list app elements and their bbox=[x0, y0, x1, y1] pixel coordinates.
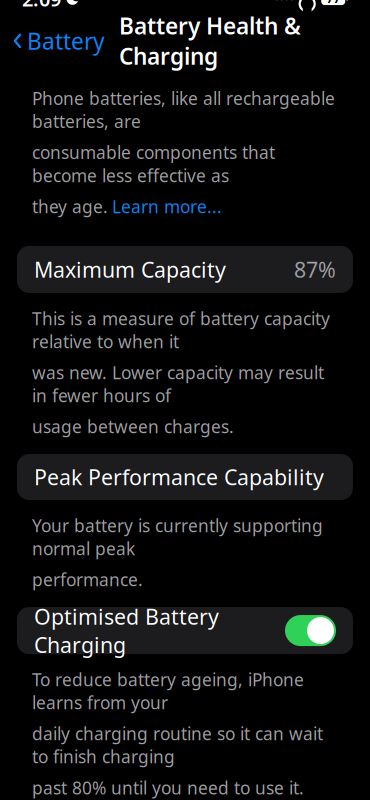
staticText: daily charging routine so it can wait to… bbox=[32, 722, 323, 768]
staticText: was new. Lower capacity may result in fe… bbox=[32, 361, 324, 407]
staticText: Peak Performance Capability bbox=[34, 463, 324, 491]
staticText: Optimised Battery Charging bbox=[34, 602, 219, 659]
staticText: 2:09 bbox=[22, 0, 61, 12]
staticText: 87% bbox=[294, 255, 336, 284]
staticText: Your battery is currently supporting nor… bbox=[32, 514, 323, 560]
staticText: they age. bbox=[32, 195, 108, 218]
button[interactable]: Learn more... bbox=[112, 195, 222, 218]
staticText: Battery bbox=[27, 26, 105, 56]
staticText: usage between charges. bbox=[32, 415, 234, 438]
staticText: To reduce battery ageing, iPhone learns … bbox=[32, 668, 304, 714]
staticText: Learn more... bbox=[112, 195, 222, 218]
button[interactable]: Battery bbox=[0, 20, 105, 62]
staticText: consumable components that become less e… bbox=[32, 141, 275, 187]
staticText: Maximum Capacity bbox=[34, 255, 226, 284]
staticText: Phone batteries, like all rechargeable b… bbox=[32, 87, 335, 133]
staticText: performance. bbox=[32, 568, 143, 591]
button[interactable]: Optimised Battery Charging bbox=[17, 607, 353, 654]
button[interactable]: Peak Performance Capability bbox=[17, 454, 353, 500]
button[interactable]: Maximum Capacity bbox=[17, 246, 353, 293]
staticText: This is a measure of battery capacity re… bbox=[32, 307, 330, 353]
staticText: past 80% until you need to use it. bbox=[32, 776, 304, 799]
staticText: 77 bbox=[326, 0, 340, 7]
staticText: Battery Health & Charging bbox=[119, 11, 301, 71]
